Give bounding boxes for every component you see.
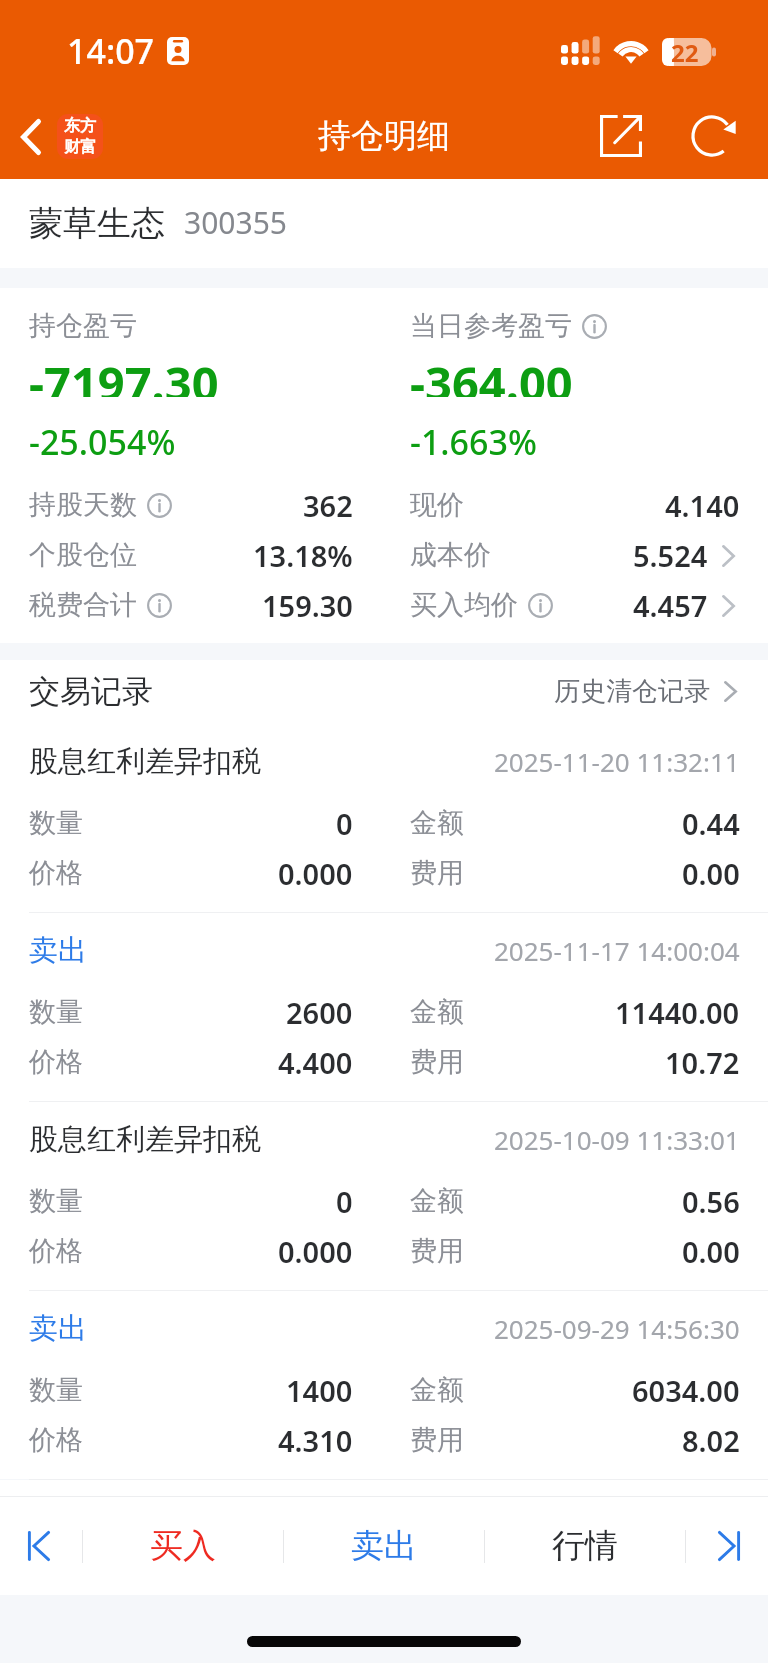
staticText: 金额: [410, 806, 464, 840]
staticText: 0: [336, 804, 353, 843]
staticText: 卖出: [29, 1310, 87, 1347]
staticText: 金额: [410, 1373, 464, 1407]
staticText: 卖出: [351, 1525, 417, 1567]
staticText: 8.02: [682, 1421, 740, 1460]
staticText: 成本价: [410, 538, 491, 572]
staticText: 2025-11-17 14:00:04: [494, 933, 740, 968]
staticText: 0.56: [682, 1182, 740, 1221]
button[interactable]: 股息红利差异扣税: [0, 1101, 768, 1290]
staticText: 持股天数: [29, 488, 137, 522]
button[interactable]: 行情: [485, 1497, 685, 1595]
staticText: 2025-11-20 11:32:11: [494, 744, 740, 779]
button[interactable]: First stock: [0, 1497, 82, 1595]
staticText: -25.054%: [29, 419, 176, 457]
staticText: 22: [671, 36, 699, 64]
staticText: 价格: [29, 856, 83, 890]
staticText: 0: [336, 1182, 353, 1221]
button[interactable]: Share: [589, 104, 653, 168]
staticText: 税费合计: [29, 588, 137, 622]
staticText: 5.524: [633, 536, 708, 575]
staticText: 11440.00: [615, 993, 740, 1032]
staticText: 股息红利差异扣税: [29, 1121, 261, 1158]
staticText: 历史清仓记录: [554, 675, 710, 708]
staticText: 交易记录: [29, 672, 153, 711]
staticText: 159.30: [262, 586, 353, 625]
staticText: 东方: [64, 116, 96, 136]
staticText: 蒙草生态: [29, 202, 165, 245]
staticText: 卖出: [29, 932, 87, 969]
staticText: 4.457: [633, 586, 708, 625]
staticText: 持仓盈亏: [29, 309, 137, 343]
staticText: 10.72: [665, 1043, 740, 1082]
staticText: 个股仓位: [29, 538, 137, 572]
staticText: 买入: [150, 1525, 216, 1567]
staticText: 数量: [29, 806, 83, 840]
staticText: 行情: [552, 1525, 618, 1567]
staticText: 2600: [286, 993, 353, 1032]
staticText: 14:07: [67, 28, 155, 74]
staticText: -1.663%: [410, 419, 537, 457]
button[interactable]: 历史清仓记录: [554, 675, 768, 708]
staticText: 数量: [29, 1373, 83, 1407]
staticText: 金额: [410, 1184, 464, 1218]
staticText: 费用: [410, 1423, 464, 1457]
staticText: 0.00: [682, 1232, 740, 1271]
staticText: 4.310: [278, 1421, 353, 1460]
staticText: 当日参考盈亏: [410, 309, 572, 343]
staticText: 股息红利差异扣税: [29, 743, 261, 780]
button[interactable]: Last stock: [686, 1497, 768, 1595]
button[interactable]: 卖出: [0, 1290, 768, 1479]
button[interactable]: Back to East Money: [8, 106, 111, 167]
staticText: 4.400: [278, 1043, 353, 1082]
staticText: 价格: [29, 1234, 83, 1268]
button[interactable]: 卖出: [284, 1497, 484, 1595]
staticText: 0.00: [682, 854, 740, 893]
staticText: 0.000: [278, 854, 353, 893]
staticText: 费用: [410, 1234, 464, 1268]
staticText: 价格: [29, 1045, 83, 1079]
staticText: 费用: [410, 1045, 464, 1079]
staticText: 6034.00: [632, 1371, 740, 1410]
staticText: 0.000: [278, 1232, 353, 1271]
staticText: -7197.30: [29, 351, 219, 397]
staticText: 1400: [286, 1371, 353, 1410]
staticText: 买入均价: [410, 588, 518, 622]
staticText: 2025-10-09 11:33:01: [494, 1122, 740, 1157]
staticText: 价格: [29, 1423, 83, 1457]
button[interactable]: 股息红利差异扣税: [0, 723, 768, 912]
button[interactable]: 买入: [83, 1497, 283, 1595]
button[interactable]: 卖出: [0, 912, 768, 1101]
staticText: 费用: [410, 856, 464, 890]
staticText: 362: [303, 486, 353, 525]
staticText: 4.140: [665, 486, 740, 525]
staticText: 数量: [29, 1184, 83, 1218]
button[interactable]: Refresh: [681, 104, 745, 168]
staticText: 0.44: [682, 804, 740, 843]
staticText: 300355: [184, 202, 287, 243]
staticText: 2025-09-29 14:56:30: [494, 1311, 740, 1346]
staticText: 现价: [410, 488, 464, 522]
staticText: 13.18%: [253, 536, 353, 575]
staticText: 持仓明细: [318, 115, 450, 157]
staticText: -364.00: [410, 351, 573, 397]
staticText: 财富: [64, 137, 96, 157]
staticText: 数量: [29, 995, 83, 1029]
staticText: 金额: [410, 995, 464, 1029]
